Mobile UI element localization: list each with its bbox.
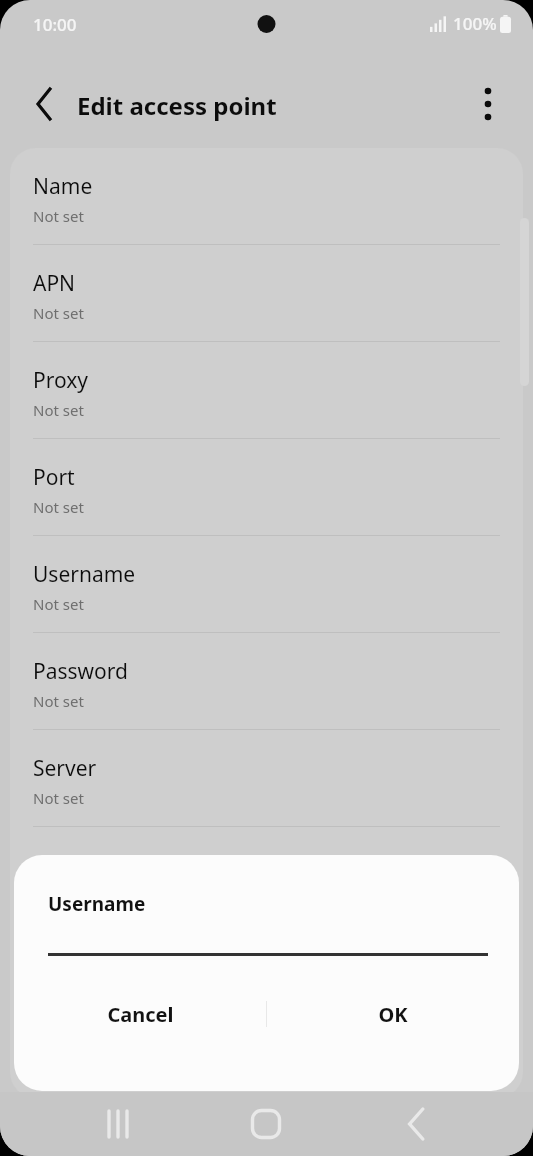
button[interactable]: APN [10, 245, 523, 341]
button[interactable]: Home [237, 1095, 295, 1153]
staticText: 10:00 [33, 13, 77, 36]
button[interactable]: More options [464, 80, 512, 128]
button[interactable]: MMS port [10, 1021, 523, 1098]
button[interactable]: Back [20, 80, 68, 128]
staticText: Not set [33, 400, 84, 420]
button[interactable]: MMS proxy [10, 924, 523, 1020]
staticText: Server [33, 754, 97, 783]
staticText: Name [33, 172, 93, 201]
button[interactable]: Server [10, 730, 523, 826]
button[interactable]: Back [386, 1095, 444, 1153]
button[interactable]: Recents [89, 1095, 147, 1153]
staticText: Not set [33, 691, 84, 711]
staticText: Edit access point [77, 89, 277, 122]
staticText: Password [33, 657, 128, 686]
staticText: Not set [33, 303, 84, 323]
button[interactable]: MMSC [10, 827, 523, 923]
button[interactable]: OK [267, 975, 519, 1053]
staticText: Username [48, 891, 146, 917]
staticText: MMSC [33, 851, 96, 880]
button[interactable]: Username [10, 536, 523, 632]
staticText: Port [33, 463, 75, 492]
button[interactable]: Port [10, 439, 523, 535]
staticText: Not set [33, 497, 84, 517]
staticText: 100% [453, 12, 497, 35]
staticText: Not set [33, 594, 84, 614]
button[interactable]: Password [10, 633, 523, 729]
staticText: Not set [33, 885, 84, 905]
staticText: Not set [33, 788, 84, 808]
staticText: MMS proxy [33, 948, 144, 977]
staticText: Proxy [33, 366, 89, 395]
button[interactable]: Name [10, 148, 523, 244]
staticText: Username [33, 560, 136, 589]
button[interactable]: Cancel [14, 975, 266, 1053]
staticText: Cancel [107, 1001, 174, 1028]
button[interactable]: Proxy [10, 342, 523, 438]
staticText: OK [378, 1001, 408, 1028]
staticText: APN [33, 269, 76, 298]
staticText: Not set [33, 206, 84, 226]
